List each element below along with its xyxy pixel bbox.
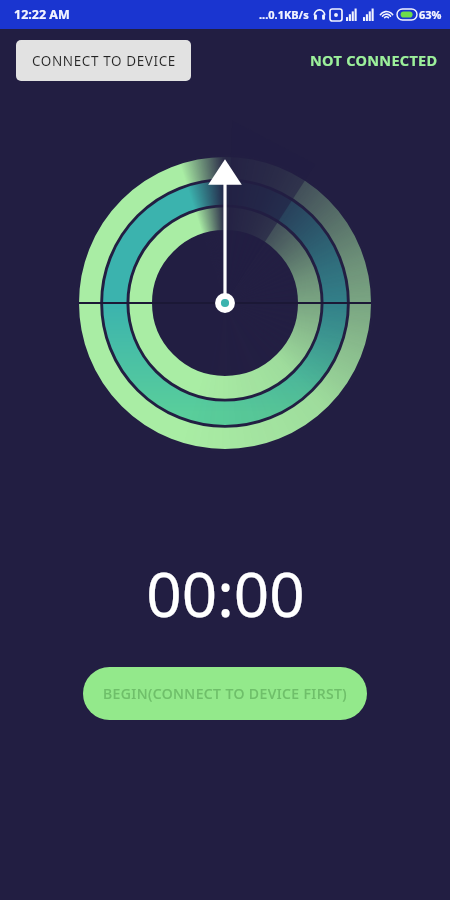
button[interactable]: BEGIN(CONNECT TO DEVICE FIRST) bbox=[83, 667, 367, 720]
button[interactable]: CONNECT TO DEVICE bbox=[16, 40, 191, 81]
staticText: 63% bbox=[419, 7, 442, 22]
staticText: ...0.1KB/s bbox=[259, 7, 309, 22]
staticText: 00:00 bbox=[146, 551, 305, 635]
staticText: BEGIN(CONNECT TO DEVICE FIRST) bbox=[103, 684, 348, 703]
staticText: CONNECT TO DEVICE bbox=[32, 52, 176, 70]
staticText: NOT CONNECTED bbox=[310, 50, 438, 70]
staticText: 12:22 AM bbox=[14, 6, 70, 23]
